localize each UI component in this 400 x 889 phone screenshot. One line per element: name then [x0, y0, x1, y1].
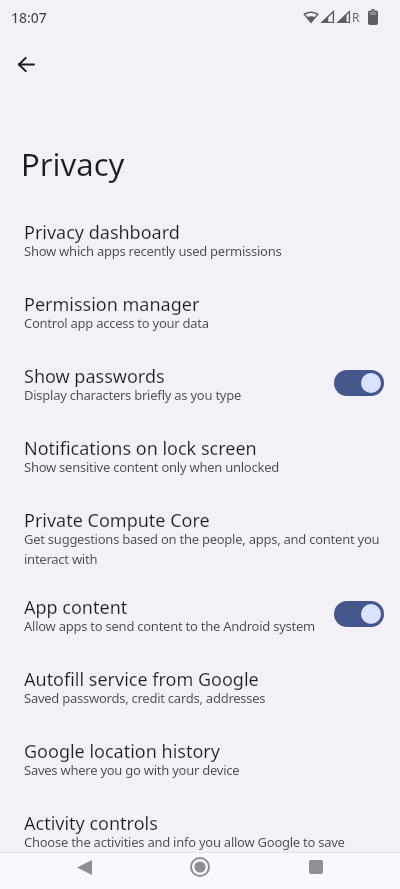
- staticText: Notifications on lock screen: [24, 436, 257, 461]
- button[interactable]: Google location history: [0, 727, 400, 799]
- staticText: Google location history: [24, 739, 220, 764]
- button[interactable]: Notifications on lock screen: [0, 424, 400, 496]
- button[interactable]: [309, 860, 323, 874]
- staticText: Saved passwords, credit cards, addresses: [24, 689, 266, 707]
- button[interactable]: Permission manager: [0, 280, 400, 352]
- staticText: Allow apps to send content to the Androi…: [24, 617, 315, 635]
- button[interactable]: [334, 601, 384, 627]
- button[interactable]: Show passwords: [0, 352, 400, 424]
- staticText: Permission manager: [24, 292, 200, 317]
- staticText: Privacy: [21, 143, 125, 185]
- button[interactable]: Privacy dashboard: [0, 208, 400, 280]
- staticText: Display characters briefly as you type: [24, 386, 242, 404]
- button[interactable]: App content: [0, 583, 400, 655]
- staticText: 18:07: [11, 8, 47, 27]
- button[interactable]: [77, 860, 92, 875]
- staticText: Control app access to your data: [24, 314, 209, 332]
- staticText: Privacy dashboard: [24, 220, 180, 245]
- staticText: Private Compute Core: [24, 508, 210, 533]
- staticText: Show sensitive content only when unlocke…: [24, 458, 279, 476]
- staticText: Saves where you go with your device: [24, 761, 240, 779]
- staticText: Show which apps recently used permission…: [24, 242, 282, 260]
- staticText: Choose the activities and info you allow…: [24, 833, 345, 851]
- button[interactable]: [190, 857, 210, 877]
- staticText: R: [352, 9, 360, 25]
- staticText: Get suggestions based on the people, app…: [24, 530, 380, 568]
- staticText: Show passwords: [24, 364, 165, 389]
- staticText: App content: [24, 595, 128, 620]
- staticText: Activity controls: [24, 811, 158, 836]
- button[interactable]: Private Compute Core: [0, 496, 400, 583]
- button[interactable]: Activity controls: [0, 799, 400, 871]
- button[interactable]: [2, 40, 50, 88]
- button[interactable]: [334, 370, 384, 396]
- staticText: Autofill service from Google: [24, 667, 259, 692]
- button[interactable]: Autofill service from Google: [0, 655, 400, 727]
